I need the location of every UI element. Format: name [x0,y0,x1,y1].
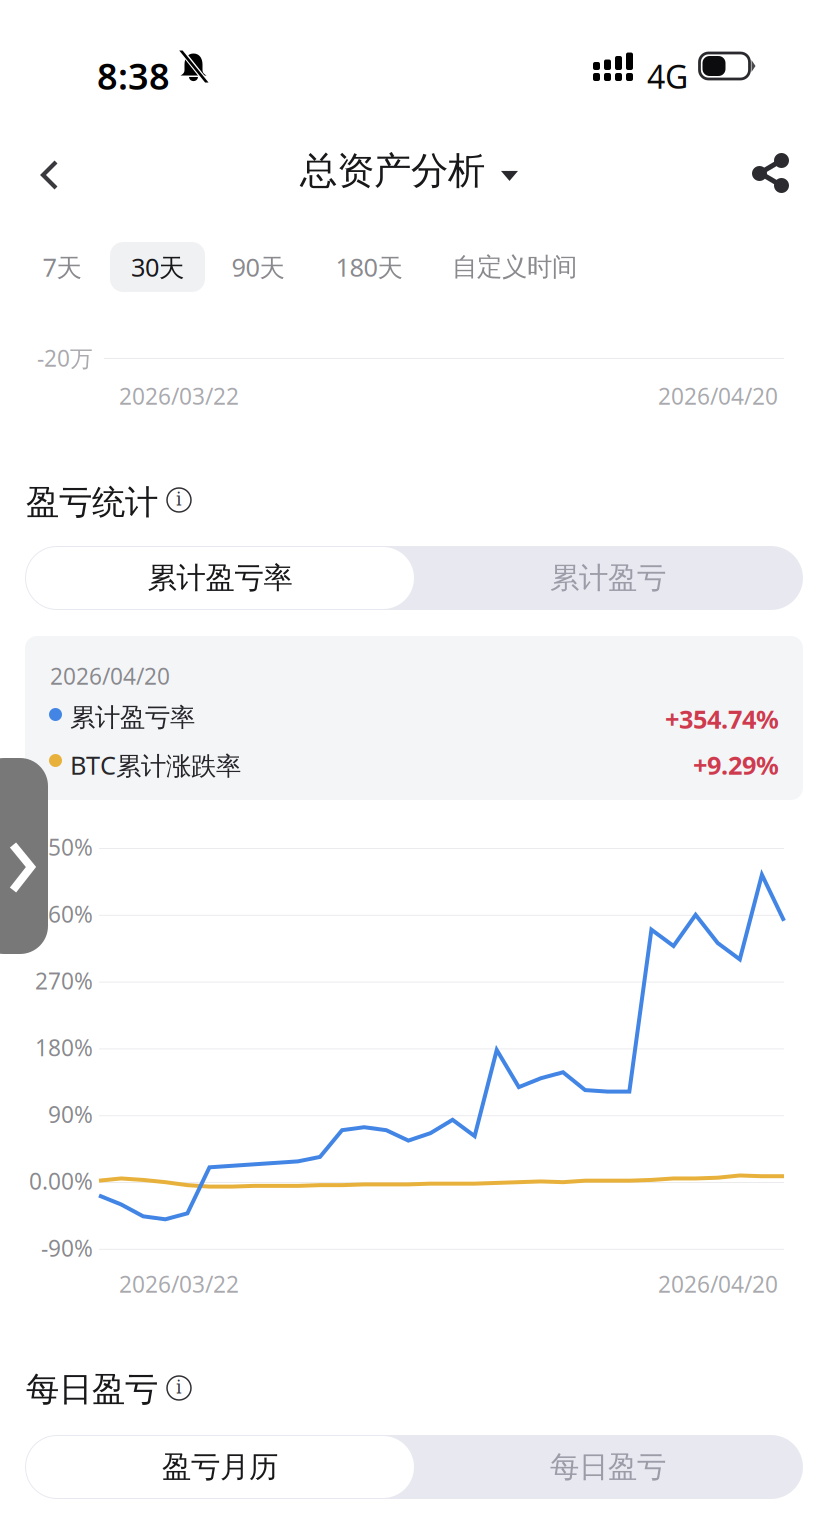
staticText: 7天 [42,250,81,284]
staticText: 450% [35,832,93,862]
staticText: 2026/03/22 [119,1269,239,1299]
staticText: 自定义时间 [452,251,577,282]
button[interactable]: 自定义时间 [0,0,828,1516]
staticText: +354.74% [665,702,779,736]
button[interactable]: Share [0,0,828,1516]
staticText: 每日盈亏 [550,1449,666,1485]
staticText: 2026/04/20 [50,661,170,691]
staticText: 累计盈亏率 [70,702,195,733]
button[interactable]: 总资产分析 [0,0,828,1516]
button[interactable]: 90天 [0,0,828,1516]
staticText: 2026/03/22 [119,381,239,411]
staticText: 360% [35,899,93,929]
staticText: 8:38 [97,52,170,100]
button[interactable]: 盈亏月历 [26,1436,414,1498]
staticText: 270% [35,966,93,996]
staticText: 2026/04/20 [658,1269,778,1299]
staticText: 累计盈亏率 [147,560,292,596]
staticText: 180% [35,1032,93,1062]
button[interactable]: 180天 [0,0,828,1516]
staticText: 30天 [131,250,184,284]
staticText: -20万 [37,343,93,373]
staticText: 90% [48,1099,93,1129]
staticText: 2026/04/20 [658,381,778,411]
button[interactable]: 累计盈亏率 [26,547,414,609]
button[interactable]: Daily profit and loss info [0,0,828,1516]
button[interactable]: 7天 [0,0,828,1516]
staticText: i [176,1377,182,1398]
staticText: 90天 [231,250,284,284]
staticText: 盈亏月历 [162,1449,278,1485]
button[interactable]: Profit and loss statistics info [0,0,828,1516]
staticText: 180天 [335,250,402,284]
staticText: i [176,489,182,510]
staticText: 盈亏统计 [26,482,158,523]
staticText: BTC累计涨跌率 [70,748,241,782]
staticText: 0.00% [29,1166,93,1196]
staticText: 每日盈亏 [26,1369,158,1410]
button[interactable]: 每日盈亏 [414,1436,802,1498]
button[interactable]: 累计盈亏 [414,547,802,609]
button[interactable]: 30天 [0,0,828,1516]
staticText: 总资产分析 [300,148,485,194]
button[interactable]: Expand side panel [0,0,828,1516]
staticText: 累计盈亏 [550,560,666,596]
staticText: 4G [647,55,688,97]
staticText: -90% [41,1233,93,1263]
button[interactable]: Back [0,0,828,1516]
staticText: +9.29% [693,748,779,782]
